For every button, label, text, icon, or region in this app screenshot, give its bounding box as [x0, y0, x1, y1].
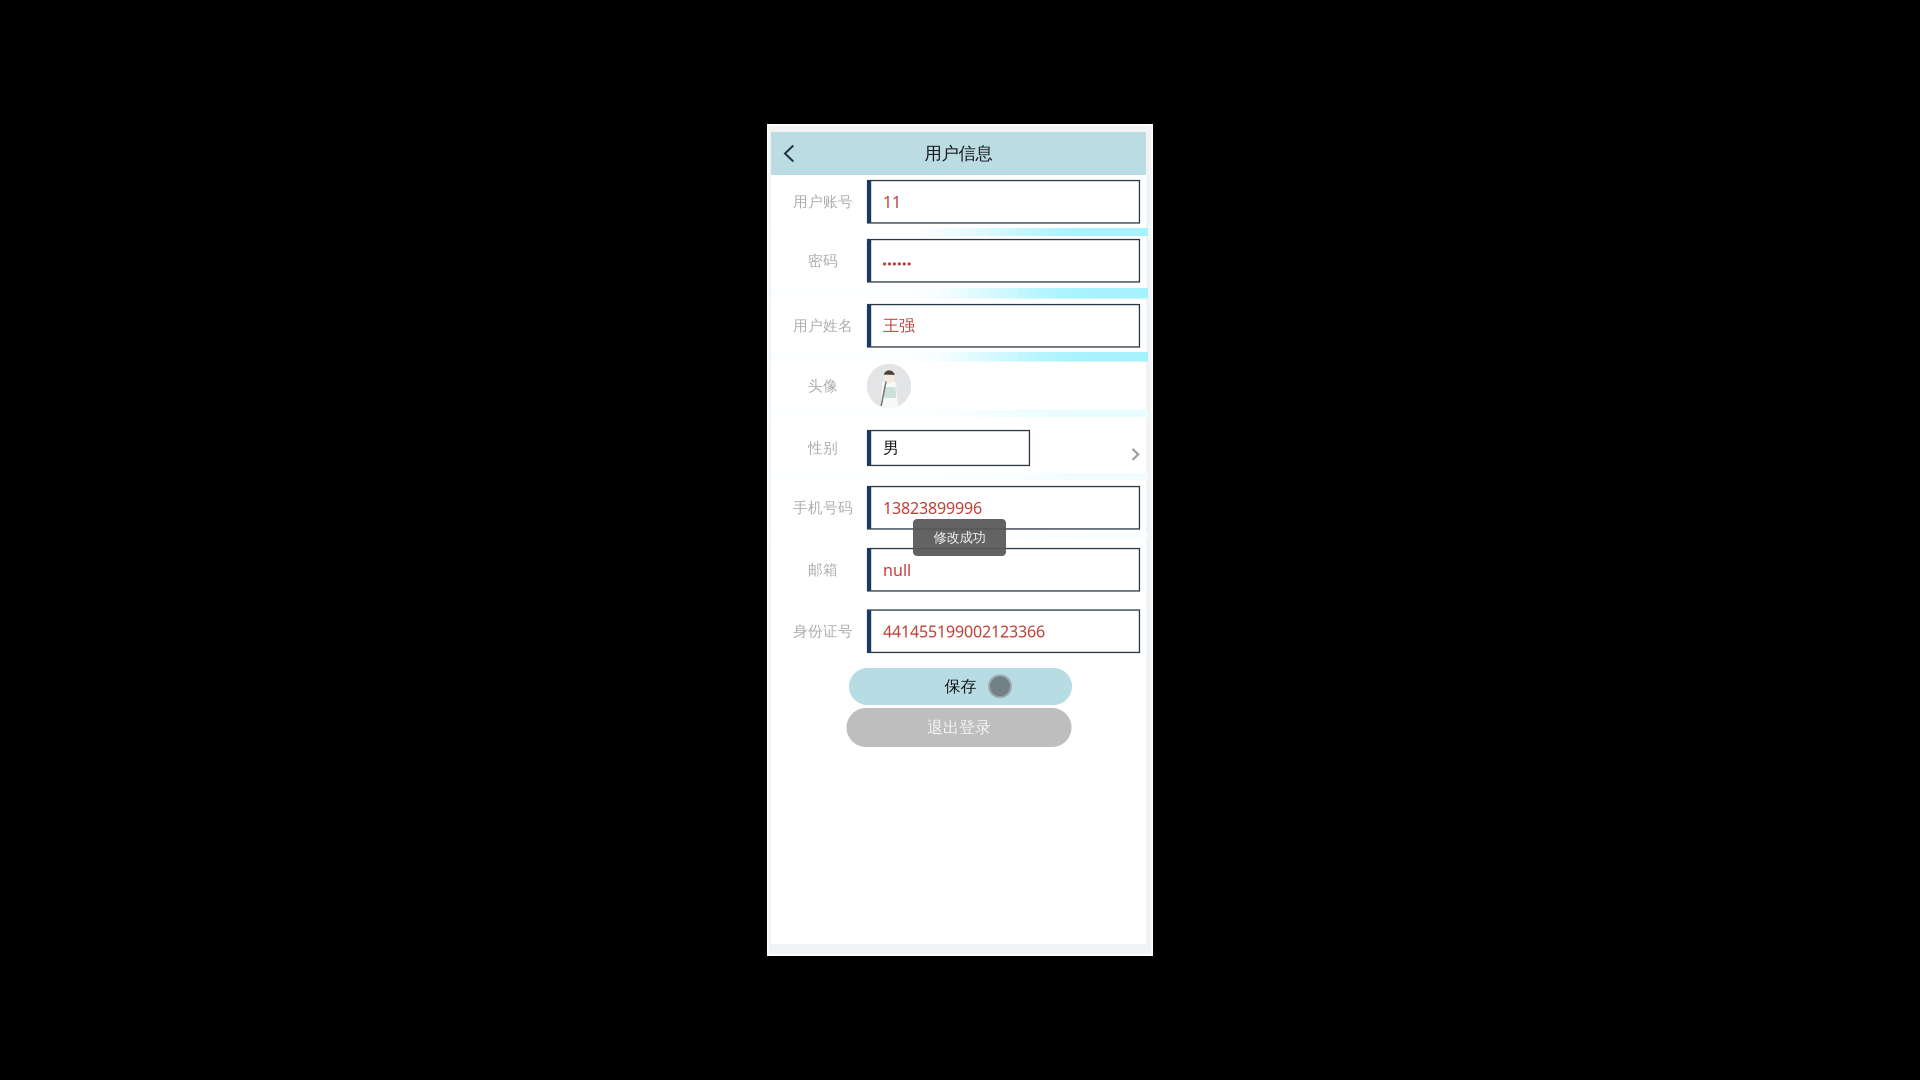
button[interactable]: 退出登录 [846, 708, 1071, 747]
button[interactable]: Change avatar [867, 364, 911, 408]
staticText: 密码 [808, 252, 838, 270]
staticText: 441455199002123366 [883, 621, 1045, 642]
staticText: 男 [883, 438, 899, 458]
staticText: 用户姓名 [793, 317, 853, 335]
staticText: null [883, 559, 911, 580]
staticText: 身份证号 [793, 622, 853, 640]
staticText: 保存 [944, 677, 976, 696]
staticText: 11 [883, 191, 901, 212]
staticText: 手机号码 [793, 499, 853, 517]
button[interactable]: 保存 [849, 668, 1072, 705]
button[interactable]: 用户账号 [771, 180, 1146, 223]
button[interactable]: 手机号码 [771, 486, 1146, 529]
staticText: 13823899996 [883, 497, 982, 518]
staticText: 用户信息 [924, 143, 992, 164]
button[interactable]: 邮箱 [771, 548, 1146, 591]
staticText: 退出登录 [927, 718, 991, 737]
staticText: 性别 [808, 439, 838, 457]
button[interactable]: 性别 [771, 430, 1146, 466]
staticText: 头像 [808, 377, 838, 395]
staticText: 用户账号 [793, 193, 853, 211]
button[interactable]: 用户姓名 [771, 304, 1146, 347]
staticText: 邮箱 [808, 561, 838, 579]
button[interactable]: Back [771, 132, 817, 175]
staticText: 修改成功 [933, 529, 985, 546]
button[interactable]: 身份证号 [771, 609, 1146, 653]
button[interactable]: 密码 [771, 239, 1146, 282]
staticText: 王强 [883, 316, 915, 336]
